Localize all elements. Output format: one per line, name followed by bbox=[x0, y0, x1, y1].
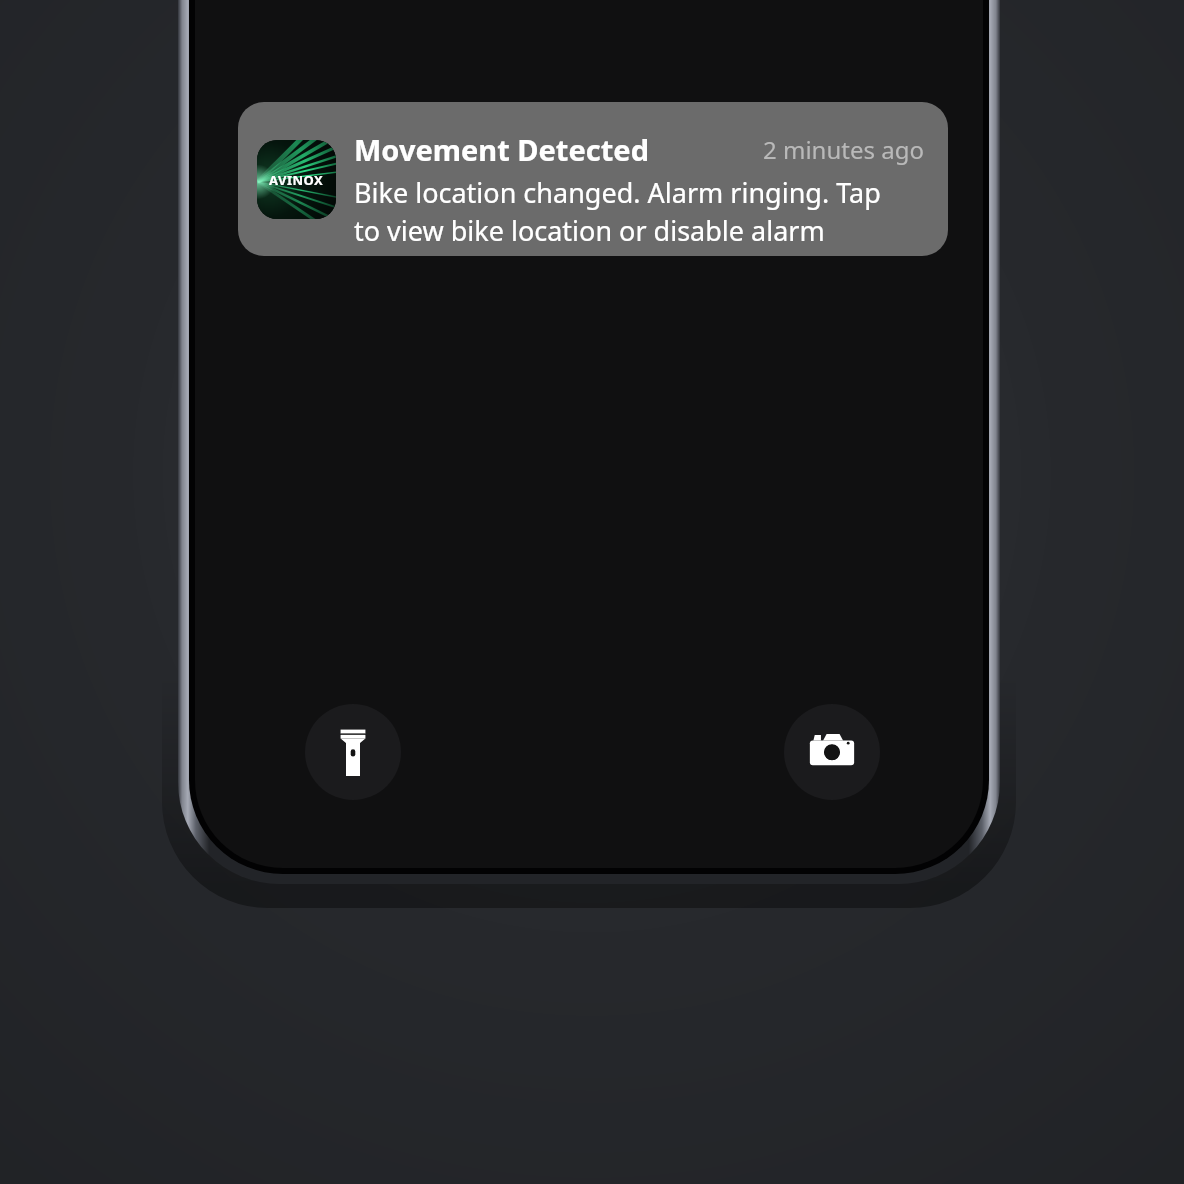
staticText: Movement Detected bbox=[354, 130, 649, 169]
staticText: 2 minutes ago bbox=[763, 133, 924, 166]
button[interactable]: AVINOX bbox=[238, 102, 948, 256]
staticText: Bike location changed. Alarm ringing. Ta… bbox=[354, 174, 881, 249]
staticText: AVINOX bbox=[269, 171, 324, 189]
button[interactable]: Flashlight bbox=[305, 704, 401, 800]
button[interactable]: Camera bbox=[784, 704, 880, 800]
